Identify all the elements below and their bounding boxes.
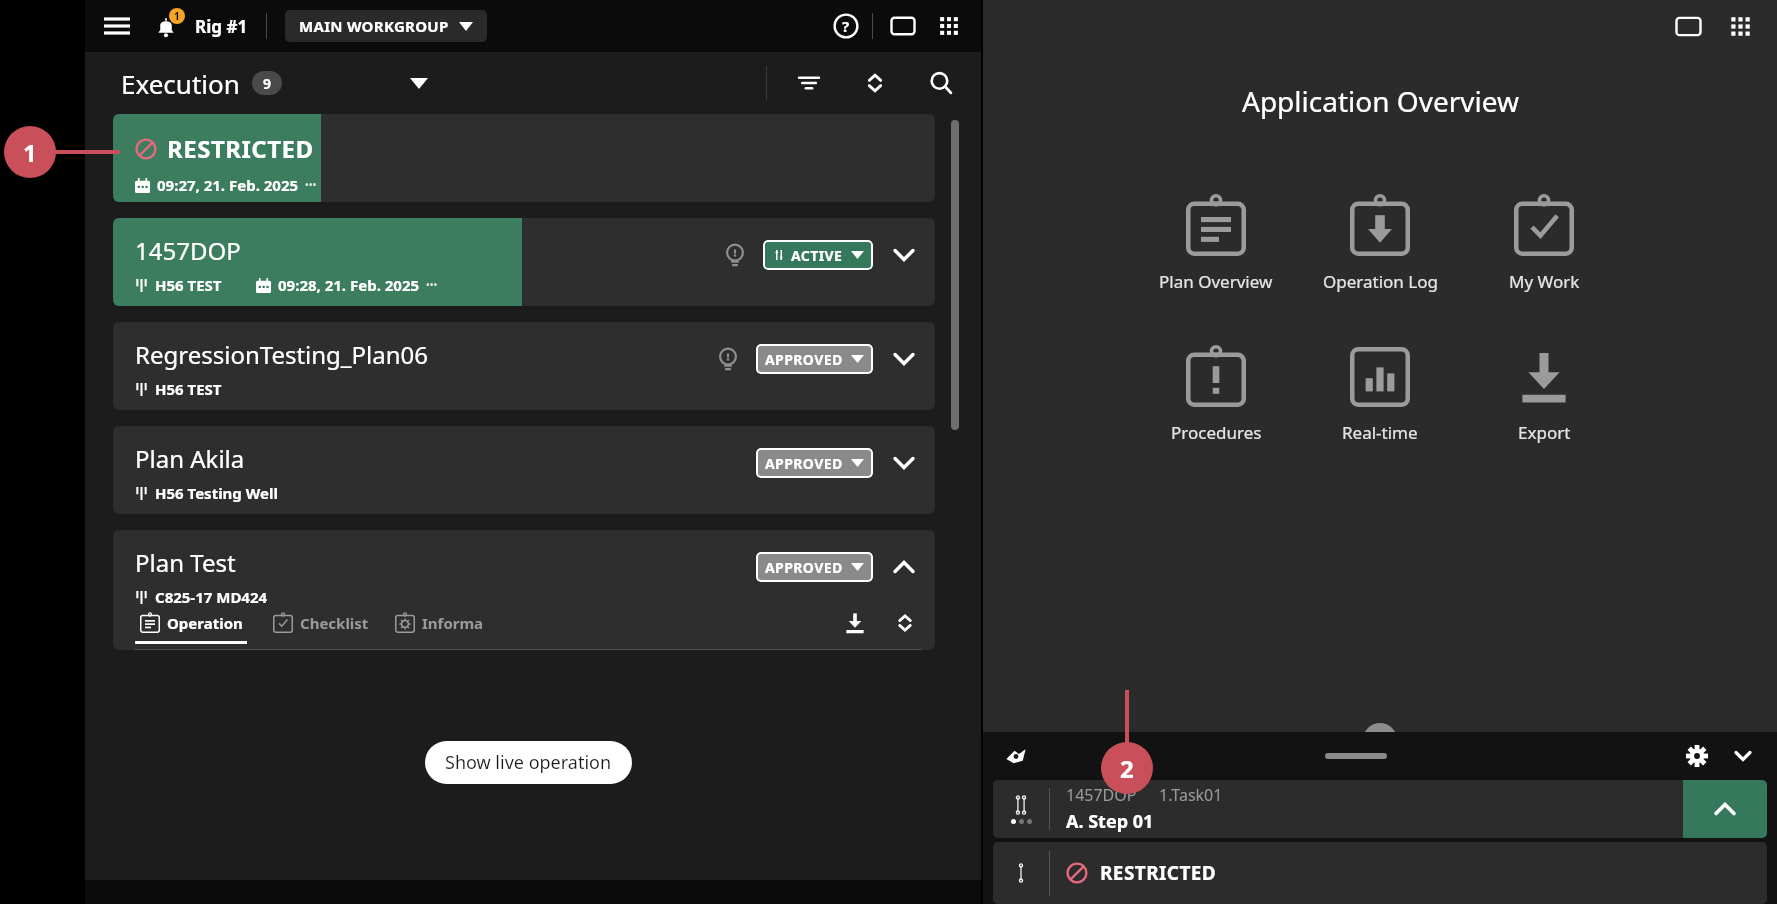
button[interactable]: Handover [1001,741,1031,771]
button[interactable]: Sort options [402,66,436,100]
staticText: RegressionTesting_Plan06 [135,338,428,371]
staticText: Plan Akila [135,442,245,475]
staticText: Export [1518,421,1571,444]
button[interactable]: Procedures [1141,343,1291,448]
staticText: 1 [174,9,180,23]
button[interactable]: Expand [887,446,921,480]
staticText: Show live operation [445,750,612,775]
button[interactable]: APPROVED [756,552,873,582]
button[interactable]: Informa [395,619,484,639]
button[interactable]: Reorder [889,607,921,639]
button[interactable]: Export [1469,343,1619,448]
staticText: Informa [422,613,484,633]
staticText: ••• [305,178,317,192]
button[interactable]: Expand step [1683,780,1767,838]
staticText: Plan Overview [1159,270,1273,293]
staticText: My Work [1509,270,1580,293]
staticText: APPROVED [765,558,843,577]
button[interactable]: Expand [887,342,921,376]
staticText: H56 TEST [155,275,222,295]
staticText: RESTRICTED [1100,860,1217,886]
button[interactable]: Operation Log [1305,192,1455,297]
button[interactable]: Filter [791,65,827,101]
button[interactable]: Sort [857,65,893,101]
button[interactable]: Apps [1723,9,1757,43]
staticText: Plan Test [135,546,236,579]
staticText: APPROVED [765,350,843,369]
button[interactable]: Help [828,8,864,44]
button[interactable]: Plan Test [113,530,935,650]
button[interactable]: RESTRICTED [113,114,935,202]
button[interactable]: 1457DOP [993,780,1767,838]
button[interactable]: Download [839,607,871,639]
staticText: 09:27, 21. Feb. 2025 [157,175,299,195]
staticText: Procedures [1171,421,1262,444]
staticText: A. Step 01 [1066,809,1154,834]
button[interactable]: Search [923,65,959,101]
button[interactable]: Window [887,10,919,42]
button[interactable]: 1457DOP [113,218,935,306]
staticText: Checklist [300,613,369,633]
staticText: H56 TEST [155,379,222,399]
staticText: 1457DOP [135,234,241,267]
staticText: C825-17 MD424 [155,587,268,607]
staticText: Operation [167,613,243,633]
button[interactable]: RESTRICTED [993,842,1767,904]
staticText: 09:28, 21. Feb. 2025 [278,275,420,295]
button[interactable]: Collapse panel [1727,740,1759,772]
staticText: APPROVED [765,454,843,473]
staticText: H56 Testing Well [155,483,278,503]
staticText: Real-time [1342,421,1418,444]
button[interactable]: My Work [1469,192,1619,297]
staticText: ••• [426,278,438,292]
staticText: ? [842,16,850,36]
button[interactable]: ACTIVE [763,240,873,270]
staticText: 9 [263,74,272,93]
staticText: Operation Log [1323,270,1438,293]
staticText: Application Overview [1242,82,1519,120]
button[interactable]: Real-time [1305,343,1455,448]
staticText: 1457DOP [1066,784,1137,806]
button[interactable]: Plan Akila [113,426,935,514]
button[interactable]: APPROVED [756,448,873,478]
button[interactable]: Menu [101,10,133,42]
button[interactable]: Checklist [273,619,369,639]
button[interactable]: Operation [135,613,247,644]
staticText: 2 [1120,752,1134,785]
staticText: MAIN WORKGROUP [299,16,449,36]
button[interactable]: Apps [933,10,965,42]
staticText: RESTRICTED [167,132,314,165]
button[interactable]: APPROVED [756,344,873,374]
button[interactable]: Window [1671,9,1705,43]
button[interactable]: Settings [1681,740,1713,772]
button[interactable]: Notifications [149,9,183,43]
staticText: Execution [121,66,240,101]
staticText: 1 [23,136,37,169]
staticText: 1.Task01 [1159,784,1223,806]
button[interactable]: MAIN WORKGROUP [285,10,487,42]
button[interactable]: Expand [887,238,921,272]
button[interactable]: Plan Overview [1141,192,1291,297]
button[interactable]: RegressionTesting_Plan06 [113,322,935,410]
staticText: Rig #1 [195,15,248,38]
button[interactable]: Collapse [887,550,921,584]
staticText: ACTIVE [791,246,843,265]
